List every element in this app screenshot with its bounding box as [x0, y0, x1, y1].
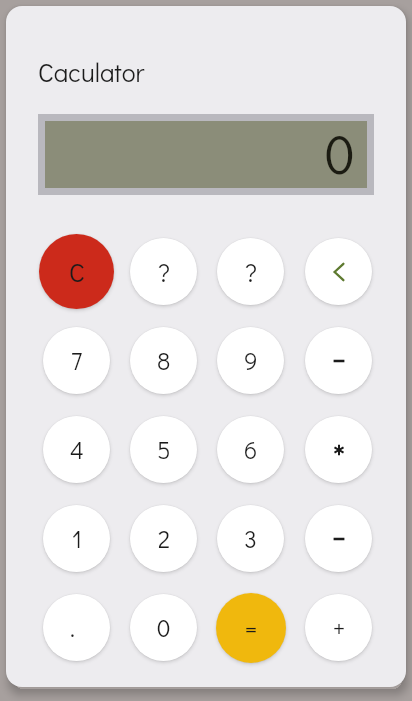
- button[interactable]: +: [305, 594, 372, 661]
- staticText: =: [245, 613, 257, 644]
- staticText: 0: [325, 119, 355, 186]
- staticText: 5: [157, 434, 171, 465]
- button[interactable]: ?: [217, 238, 284, 305]
- button[interactable]: 7: [43, 327, 110, 394]
- staticText: C: [69, 255, 85, 289]
- button[interactable]: 2: [130, 505, 197, 572]
- button[interactable]: .: [43, 594, 110, 661]
- staticText: 8: [157, 345, 171, 376]
- staticText: Caculator: [38, 55, 145, 89]
- button[interactable]: 9: [217, 327, 284, 394]
- staticText: 2: [158, 523, 170, 554]
- button[interactable]: C: [39, 234, 114, 309]
- staticText: ?: [158, 255, 170, 289]
- button[interactable]: ?: [130, 238, 197, 305]
- button[interactable]: [305, 416, 372, 483]
- staticText: +: [333, 612, 345, 643]
- button[interactable]: 4: [43, 416, 110, 483]
- button[interactable]: [305, 238, 372, 305]
- button[interactable]: [305, 327, 372, 394]
- button[interactable]: [305, 505, 372, 572]
- button[interactable]: =: [216, 593, 286, 663]
- button[interactable]: 1: [43, 505, 110, 572]
- staticText: 4: [70, 434, 84, 465]
- staticText: ?: [245, 255, 257, 289]
- button[interactable]: 3: [217, 505, 284, 572]
- staticText: 6: [244, 434, 258, 465]
- button[interactable]: 5: [130, 416, 197, 483]
- staticText: .: [70, 612, 75, 643]
- staticText: 1: [72, 523, 82, 554]
- button[interactable]: 8: [130, 327, 197, 394]
- button[interactable]: 0: [130, 594, 197, 661]
- staticText: 0: [157, 612, 171, 643]
- button[interactable]: 6: [217, 416, 284, 483]
- staticText: 3: [244, 523, 257, 554]
- staticText: 7: [71, 345, 83, 376]
- staticText: 9: [244, 345, 258, 376]
